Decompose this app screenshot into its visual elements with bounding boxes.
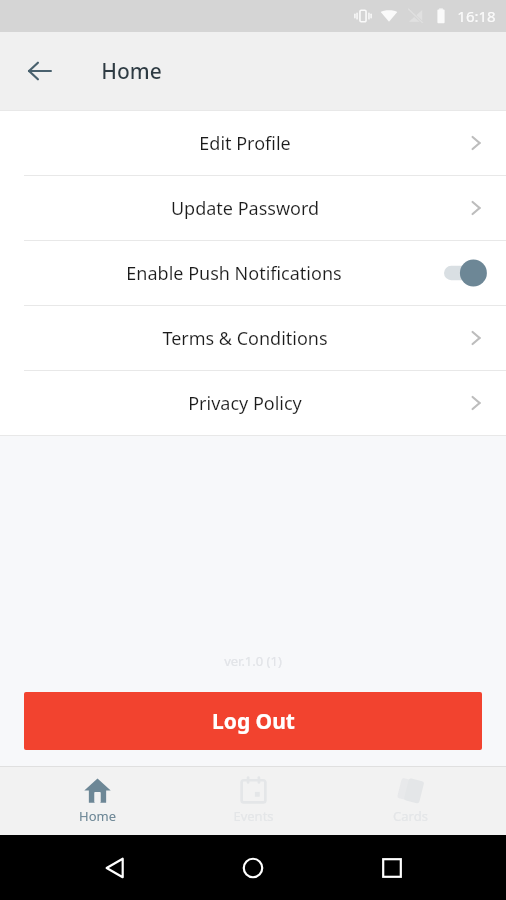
button[interactable]: Enable Push Notifications toggle <box>444 258 486 288</box>
staticText: Cards <box>393 807 428 825</box>
staticText: Update Password <box>24 196 466 221</box>
button[interactable]: Back <box>18 49 62 93</box>
button[interactable]: Enable Push Notifications <box>0 241 506 305</box>
button[interactable]: Log Out <box>24 692 482 750</box>
staticText: Home <box>79 807 116 825</box>
button[interactable]: Recent apps <box>368 844 416 892</box>
button[interactable]: Edit Profile <box>0 111 506 175</box>
button[interactable]: Privacy Policy <box>0 371 506 435</box>
staticText: Privacy Policy <box>24 391 466 416</box>
staticText: ver.1.0 (1) <box>224 652 282 670</box>
staticText: Home <box>101 57 162 86</box>
staticText: Events <box>233 807 274 825</box>
staticText: Edit Profile <box>24 131 466 156</box>
button[interactable]: Home <box>229 844 277 892</box>
staticText: Enable Push Notifications <box>24 261 444 286</box>
button[interactable]: Back <box>91 844 139 892</box>
button[interactable]: Terms & Conditions <box>0 306 506 370</box>
staticText: Terms & Conditions <box>24 326 466 351</box>
staticText: Log Out <box>212 707 295 736</box>
staticText: 16:18 <box>457 6 496 26</box>
button[interactable]: Cards <box>350 767 470 835</box>
button[interactable]: Home <box>37 767 157 835</box>
button[interactable]: Update Password <box>0 176 506 240</box>
